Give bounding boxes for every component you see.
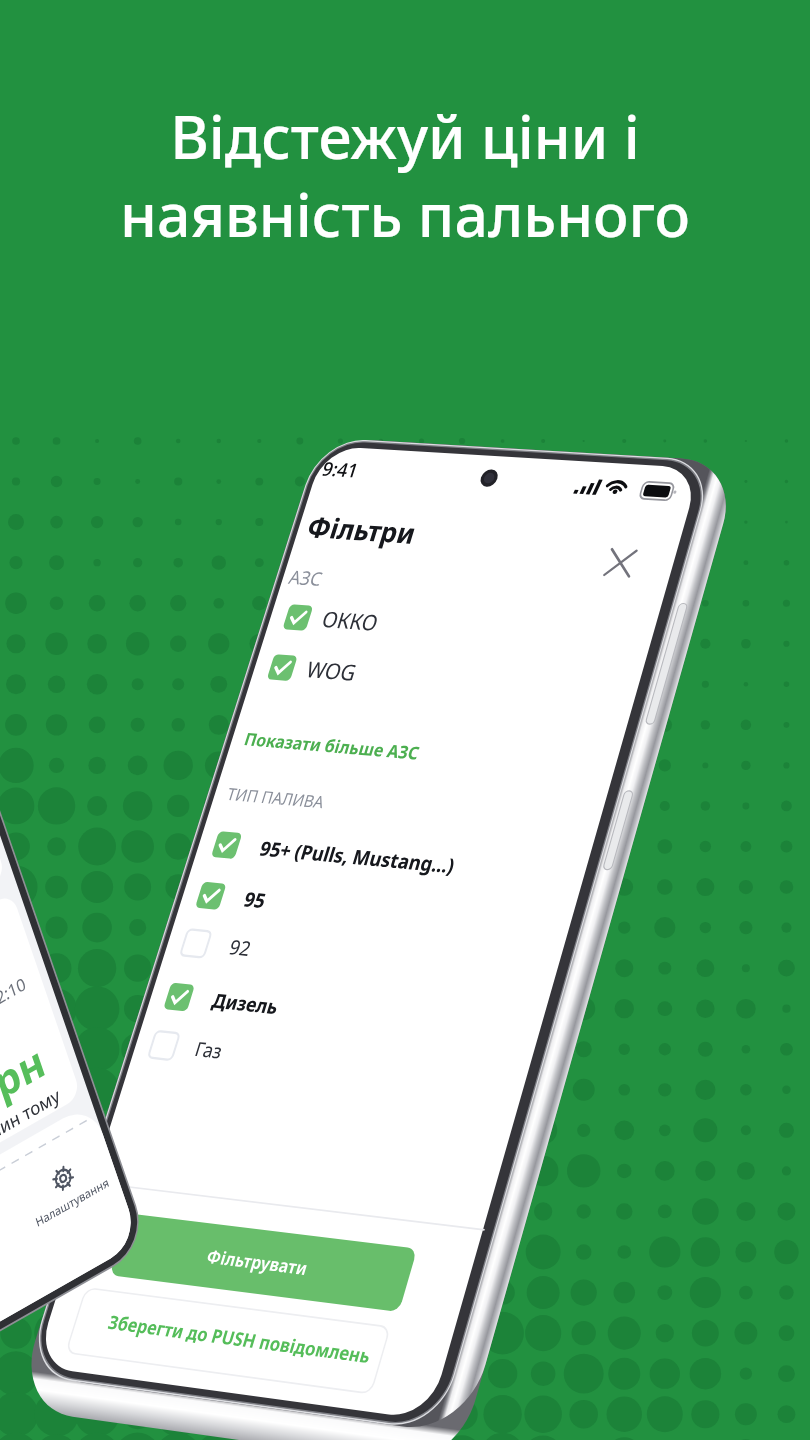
button[interactable] [236,723,433,773]
button[interactable] [155,975,460,1048]
button[interactable] [258,647,558,710]
button[interactable] [139,1023,445,1097]
button[interactable] [109,1213,417,1312]
button[interactable] [202,824,505,892]
button[interactable] [171,922,475,993]
button[interactable]: Закрити фільтри [596,542,644,583]
button[interactable] [274,597,573,659]
button[interactable] [66,1288,390,1394]
button[interactable]: Налаштування [26,1135,117,1236]
button[interactable] [187,874,491,943]
